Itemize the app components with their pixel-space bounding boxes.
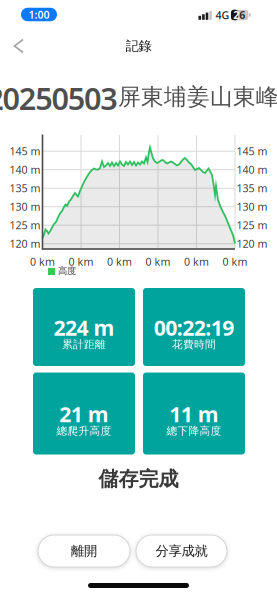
staticText: 花費時間 xyxy=(172,338,216,351)
staticText: 120 m xyxy=(236,237,267,251)
staticText: 0 km xyxy=(30,254,55,269)
staticText: 120 m xyxy=(9,237,40,251)
staticText: 離開 xyxy=(71,543,97,559)
button[interactable]: 離開 xyxy=(38,535,130,567)
staticText: 224 m xyxy=(53,313,114,342)
staticText: 1:00 xyxy=(28,7,49,22)
staticText: 0 km xyxy=(68,254,93,269)
staticText: 11 m xyxy=(169,400,219,428)
button[interactable]: 分享成就 xyxy=(136,535,227,567)
staticText: 140 m xyxy=(236,163,267,177)
staticText: 135 m xyxy=(236,181,267,195)
staticText: 累計距離 xyxy=(62,338,106,351)
staticText: 125 m xyxy=(9,218,40,232)
staticText: 高度 xyxy=(58,265,76,277)
staticText: 4G xyxy=(215,8,229,22)
staticText: 0 km xyxy=(107,254,132,269)
staticText: 6 xyxy=(239,8,245,22)
staticText: 0 km xyxy=(184,254,209,269)
staticText: 分享成就 xyxy=(155,543,207,559)
staticText: 21 m xyxy=(59,400,109,428)
button[interactable]: Back xyxy=(4,31,34,61)
staticText: 總下降高度 xyxy=(166,424,221,437)
staticText: 總爬升高度 xyxy=(56,424,111,437)
staticText: 2 xyxy=(233,8,239,22)
staticText: 130 m xyxy=(236,200,267,214)
staticText: 135 m xyxy=(9,181,40,195)
staticText: 0 km xyxy=(145,254,170,269)
staticText: 20250503 xyxy=(0,78,118,118)
staticText: 記錄 xyxy=(125,38,151,54)
staticText: 00:22:19 xyxy=(154,313,234,342)
staticText: 125 m xyxy=(236,218,267,232)
staticText: 130 m xyxy=(9,200,40,214)
staticText: 140 m xyxy=(9,163,40,177)
staticText: 145 m xyxy=(9,144,40,158)
staticText: 0 km xyxy=(222,254,247,269)
staticText: 儲存完成 xyxy=(98,467,178,491)
staticText: 145 m xyxy=(236,144,267,158)
staticText: 屏東埔姜山東峰 xyxy=(118,83,277,111)
